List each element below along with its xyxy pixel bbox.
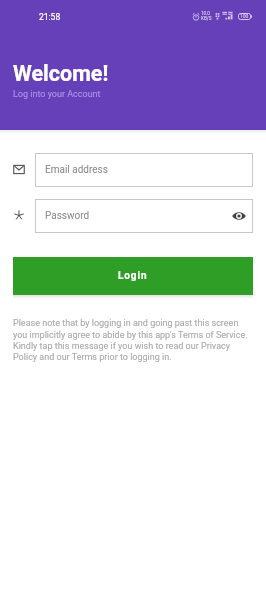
button[interactable]: Please note that by logging in and going… — [13, 318, 253, 362]
staticText: Login — [118, 270, 148, 282]
staticText: KB/S — [201, 16, 212, 21]
staticText: 10.0 — [201, 11, 210, 16]
staticText: 100 — [240, 13, 249, 19]
staticText: Email address — [45, 164, 108, 176]
staticText: 21:58 — [39, 12, 61, 22]
button[interactable]: Show password — [228, 205, 250, 227]
button[interactable]: Login — [13, 257, 253, 295]
button[interactable]: Email address — [35, 153, 253, 187]
staticText: Log into your Account — [13, 89, 101, 100]
staticText: Welcome! — [13, 61, 109, 86]
staticText: Password — [45, 210, 90, 222]
button[interactable]: Password — [35, 199, 253, 233]
